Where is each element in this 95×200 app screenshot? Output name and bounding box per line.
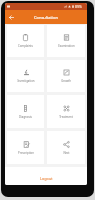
button[interactable]: Next	[47, 131, 85, 164]
button[interactable]: Diagnosis	[7, 95, 44, 128]
staticText: Treatment	[59, 115, 73, 119]
staticText: Growth	[61, 79, 71, 83]
staticText: Prescription	[18, 151, 34, 155]
staticText: Diagnosis	[19, 115, 32, 119]
button[interactable]: Complaints	[7, 25, 44, 57]
button[interactable]: Examination	[47, 25, 85, 57]
staticText: Logout	[40, 176, 53, 181]
button[interactable]: Logout	[37, 175, 56, 182]
staticText: Complaints	[18, 44, 33, 48]
staticText: Next	[63, 151, 70, 155]
button[interactable]: Investigation	[7, 60, 44, 92]
staticText: 89%	[75, 4, 82, 9]
button[interactable]: Treatment	[47, 95, 85, 128]
staticText: Consultation	[34, 15, 58, 20]
button[interactable]: Prescription	[7, 131, 44, 164]
button[interactable]: Back	[6, 12, 16, 22]
button[interactable]: Growth	[47, 60, 85, 92]
staticText: Examination	[58, 44, 75, 48]
staticText: Investigation	[17, 79, 35, 83]
